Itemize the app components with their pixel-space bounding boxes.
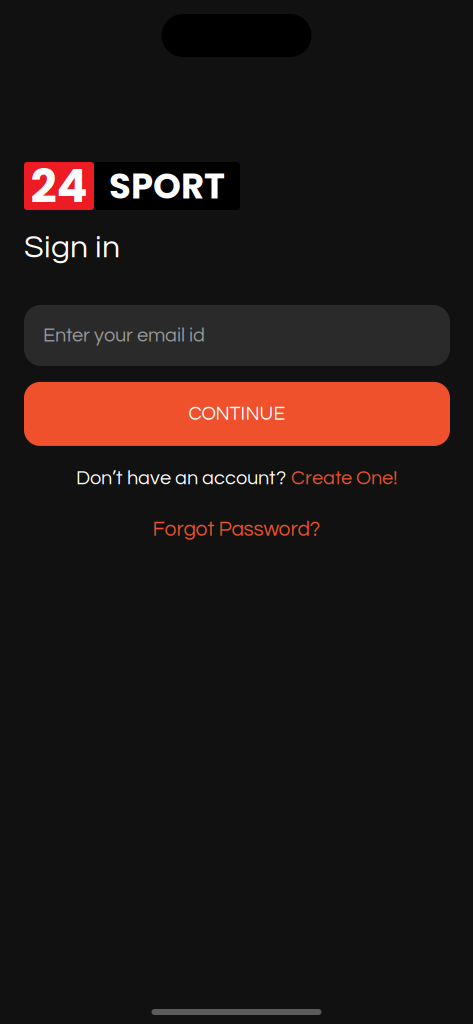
button[interactable]: CONTINUE — [24, 382, 450, 446]
staticText: Enter your email id — [43, 325, 205, 346]
staticText: 24 — [30, 154, 87, 218]
staticText: CONTINUE — [188, 404, 285, 424]
staticText: SPORT — [109, 161, 225, 211]
staticText: Forgot Password? — [152, 519, 320, 540]
button[interactable]: Forgot Password? — [152, 519, 320, 540]
staticText: Create One! — [291, 468, 397, 489]
staticText: Don’t have an account? — [76, 468, 286, 489]
button[interactable]: Create One! — [291, 468, 397, 489]
staticText: Sign in — [24, 231, 120, 264]
